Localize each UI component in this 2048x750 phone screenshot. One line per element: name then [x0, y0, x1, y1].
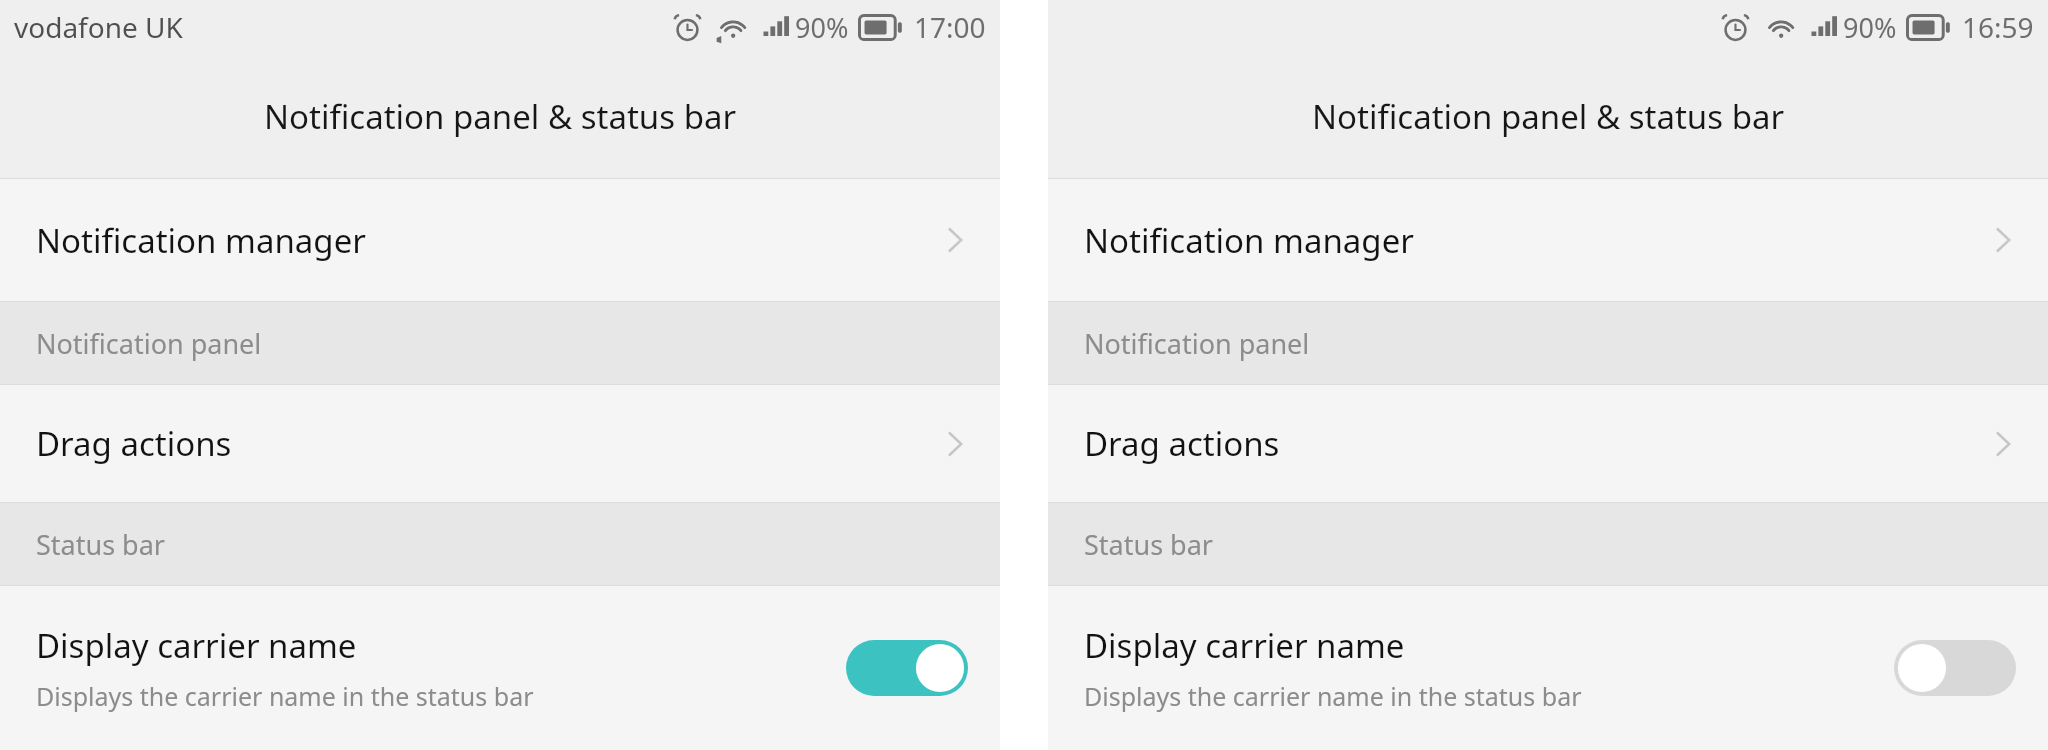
button[interactable]: Display carrier name [846, 640, 968, 696]
staticText: Notification panel & status bar [1312, 94, 1785, 139]
staticText: Status bar [36, 526, 166, 563]
staticText: 16:59 [1962, 8, 2034, 46]
staticText: Notification panel [1084, 325, 1310, 362]
staticText: Notification panel [36, 325, 262, 362]
button[interactable]: Drag actions [1048, 385, 2048, 502]
staticText: Displays the carrier name in the status … [1084, 679, 1582, 713]
button[interactable]: Display carrier name [1894, 640, 2016, 696]
button[interactable]: Display carrier name [1048, 586, 2048, 750]
button[interactable]: Drag actions [0, 385, 1000, 502]
staticText: 90% [1843, 9, 1897, 46]
staticText: Drag actions [1084, 421, 1280, 466]
button[interactable]: Notification manager [1048, 179, 2048, 301]
staticText: Display carrier name [36, 623, 357, 668]
staticText: 17:00 [914, 8, 986, 46]
staticText: Drag actions [36, 421, 232, 466]
staticText: 90% [795, 9, 849, 46]
staticText: Notification manager [1084, 218, 1414, 263]
staticText: Displays the carrier name in the status … [36, 679, 534, 713]
staticText: Notification manager [36, 218, 366, 263]
staticText: Notification panel & status bar [264, 94, 737, 139]
staticText: Status bar [1084, 526, 1214, 563]
button[interactable]: Notification manager [0, 179, 1000, 301]
staticText: Display carrier name [1084, 623, 1405, 668]
staticText: vodafone UK [14, 8, 183, 46]
button[interactable]: Display carrier name [0, 586, 1000, 750]
